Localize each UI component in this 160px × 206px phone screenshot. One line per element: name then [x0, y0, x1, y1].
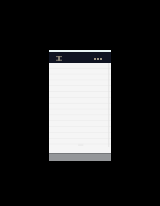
- button[interactable]: Menu: [55, 54, 63, 62]
- button[interactable]: Navigation bar: [49, 153, 111, 161]
- button[interactable]: Action: [93, 56, 96, 61]
- button[interactable]: Action: [96, 56, 99, 61]
- button[interactable]: Action: [99, 56, 102, 61]
